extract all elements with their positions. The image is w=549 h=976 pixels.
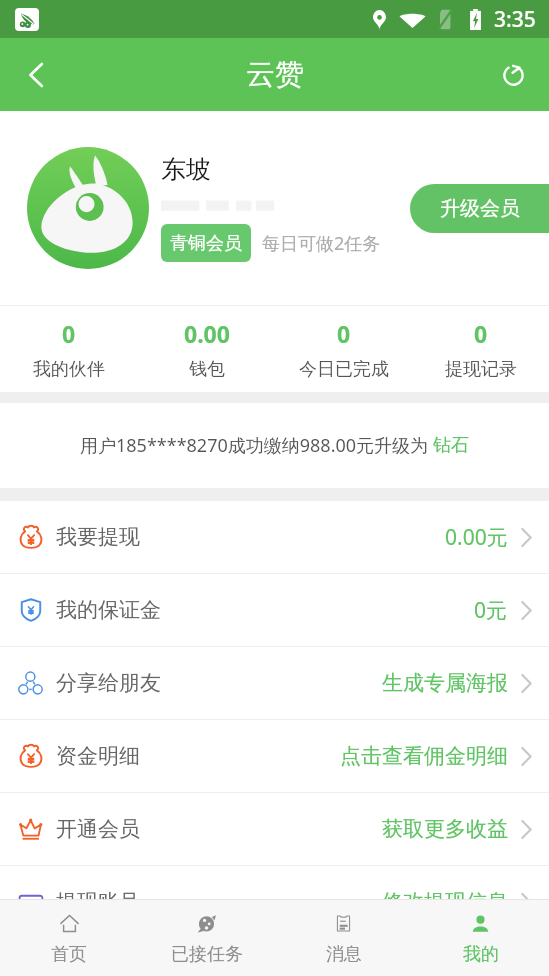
button[interactable]: 我的保证金 [0,574,549,646]
staticText: 我要提现 [56,524,140,550]
staticText: 今日已完成 [299,358,389,381]
staticText: 我的伙伴 [33,358,105,381]
button[interactable]: 首页 [0,900,138,976]
button[interactable]: 消息 [275,900,412,976]
staticText: 钻石 [433,434,469,457]
staticText: 开通会员 [56,816,140,842]
button[interactable]: Back [12,51,60,99]
staticText: 消息 [326,943,362,966]
staticText: 0 [337,318,351,349]
staticText: 点击查看佣金明细 [340,743,508,769]
staticText: 提现记录 [445,358,517,381]
button[interactable]: 0.00 [138,306,275,392]
staticText: 提现账号 [56,889,140,915]
button[interactable]: 分享给朋友 [0,647,549,719]
button[interactable]: 0 [275,306,412,392]
staticText: 3:35 [494,5,536,34]
button[interactable]: 0 [412,306,549,392]
staticText: 我的 [463,943,499,966]
staticText: 0 [62,318,76,349]
button[interactable]: 我的 [412,900,549,976]
staticText: 分享给朋友 [56,670,161,696]
button[interactable]: 升级会员 [410,184,549,233]
staticText: 首页 [51,943,87,966]
staticText: 钱包 [189,358,225,381]
button[interactable]: 已接任务 [138,900,275,976]
staticText: 青铜会员 [170,232,242,255]
button[interactable]: 开通会员 [0,793,549,865]
staticText: 我的保证金 [56,597,161,623]
staticText: 0.00 [184,318,230,349]
staticText: 修改提现信息 [382,889,508,915]
staticText: 获取更多收益 [382,816,508,842]
staticText: 资金明细 [56,743,140,769]
staticText: 0.00元 [445,523,508,552]
staticText: 每日可做2任务 [262,231,381,256]
staticText: 0元 [474,596,508,625]
staticText: 东坡 [161,154,211,185]
button[interactable]: 资金明细 [0,720,549,792]
staticText: 0 [474,318,488,349]
button[interactable]: 提现账号 [0,866,549,938]
staticText: 已接任务 [171,943,243,966]
button[interactable]: Refresh [491,53,535,97]
button[interactable]: 0 [0,306,138,392]
staticText: 用户185****8270成功缴纳988.00元升级为 [80,433,433,458]
staticText: 生成专属海报 [382,670,508,696]
staticText: 升级会员 [440,196,520,221]
button[interactable]: 我要提现 [0,501,549,573]
staticText: 云赞 [246,56,304,93]
